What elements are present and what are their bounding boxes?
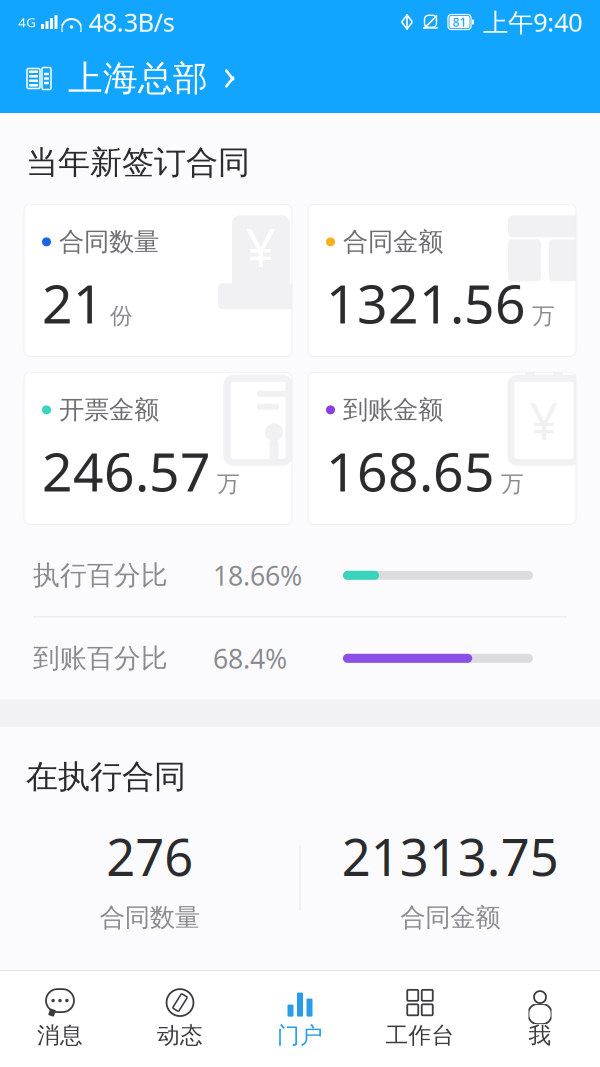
staticText: 上午9:40 [483, 5, 582, 39]
staticText: 合同金额 [343, 226, 443, 257]
staticText: 工作台 [385, 1022, 454, 1049]
staticText: 合同金额 [400, 902, 500, 933]
staticText: 4G [18, 13, 36, 31]
button[interactable]: 21313.75 [300, 823, 600, 933]
staticText: 合同数量 [59, 226, 159, 257]
button[interactable]: ¥ [24, 204, 292, 356]
staticText: 到账百分比 [33, 642, 168, 675]
staticText: 18.66% [213, 558, 302, 593]
staticText: 合同数量 [100, 902, 200, 933]
button[interactable]: 工作台 [360, 975, 480, 1063]
staticText: 开票金额 [59, 394, 159, 425]
button[interactable]: 消息 [0, 975, 120, 1063]
button[interactable]: 门户 [240, 975, 360, 1063]
button[interactable]: 我 [480, 975, 600, 1063]
staticText: 门户 [277, 1022, 323, 1049]
staticText: 在执行合同 [26, 757, 186, 797]
staticText: ¥ [245, 211, 276, 282]
button[interactable]: ¥ [308, 372, 576, 524]
staticText: 246.57 [42, 435, 211, 506]
staticText: 1321.56 [326, 267, 526, 338]
staticText: 68.4% [213, 641, 287, 676]
button[interactable]: 上海总部 [22, 57, 237, 100]
staticText: 执行百分比 [33, 559, 168, 592]
staticText: 当年新签订合同 [26, 143, 250, 182]
staticText: 动态 [157, 1022, 203, 1049]
staticText: ¥ [529, 387, 558, 454]
staticText: 万 [501, 470, 524, 498]
staticText: 276 [106, 823, 193, 890]
staticText: 21 [42, 267, 104, 338]
button[interactable]: 开票金额 [24, 372, 292, 524]
button[interactable]: 合同金额 [308, 204, 576, 356]
staticText: 上海总部 [68, 57, 208, 100]
staticText: 48.3B/s [88, 5, 174, 39]
staticText: 消息 [37, 1022, 83, 1049]
staticText: 到账金额 [343, 394, 443, 425]
staticText: 21313.75 [342, 823, 559, 890]
staticText: 份 [110, 302, 133, 330]
staticText: 万 [217, 470, 240, 498]
staticText: 168.65 [326, 435, 495, 506]
staticText: 万 [532, 302, 555, 330]
button[interactable]: 276 [0, 823, 299, 933]
staticText: 我 [528, 1022, 551, 1049]
button[interactable]: 动态 [120, 975, 240, 1063]
staticText: 81 [452, 14, 466, 30]
